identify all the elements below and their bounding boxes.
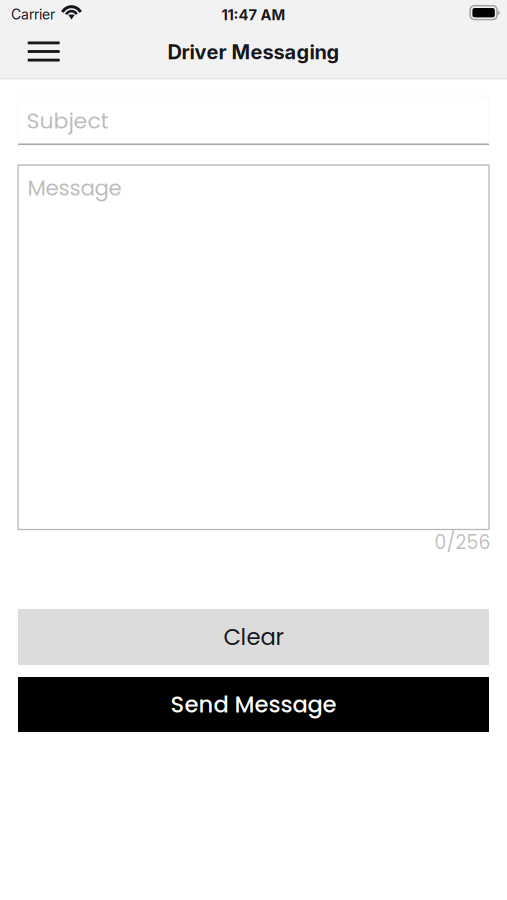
staticText: Subject (27, 105, 109, 136)
textField[interactable]: Message (18, 165, 489, 529)
staticText: Carrier (11, 6, 55, 23)
button[interactable]: Clear (18, 609, 489, 665)
button[interactable]: Send Message (18, 677, 489, 732)
staticText: Driver Messaging (167, 40, 339, 64)
staticText: 11:47 AM (221, 6, 285, 24)
staticText: Send Message (170, 689, 336, 720)
staticText: Clear (223, 621, 283, 653)
staticText: 0/256 (434, 529, 490, 556)
staticText: Message (27, 173, 121, 203)
navigationBar: Driver Messaging (0, 26, 507, 78)
button[interactable]: Menu (20, 33, 68, 69)
textField[interactable]: Subject (18, 96, 489, 145)
